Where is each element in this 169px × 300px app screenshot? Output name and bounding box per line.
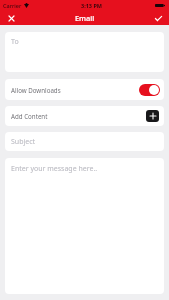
button[interactable]: Send — [152, 12, 164, 24]
button[interactable]: Add Content — [146, 110, 159, 122]
staticText: 3:13 PM — [81, 2, 103, 9]
staticText: Carrier — [3, 2, 22, 9]
button[interactable]: Close — [5, 12, 17, 24]
staticText: Allow Downloads — [11, 86, 61, 94]
button[interactable]: Enter your message here.. — [5, 158, 164, 294]
staticText: Enter your message here.. — [11, 164, 98, 174]
button[interactable]: Subject — [5, 132, 164, 151]
button[interactable]: Allow Downloads — [139, 84, 160, 96]
button[interactable]: Add Content — [5, 106, 164, 126]
button[interactable]: Allow Downloads — [5, 79, 164, 100]
staticText: Subject — [11, 137, 36, 147]
staticText: To — [11, 37, 19, 47]
staticText: Add Content — [11, 112, 48, 120]
staticText: Email — [75, 13, 95, 23]
